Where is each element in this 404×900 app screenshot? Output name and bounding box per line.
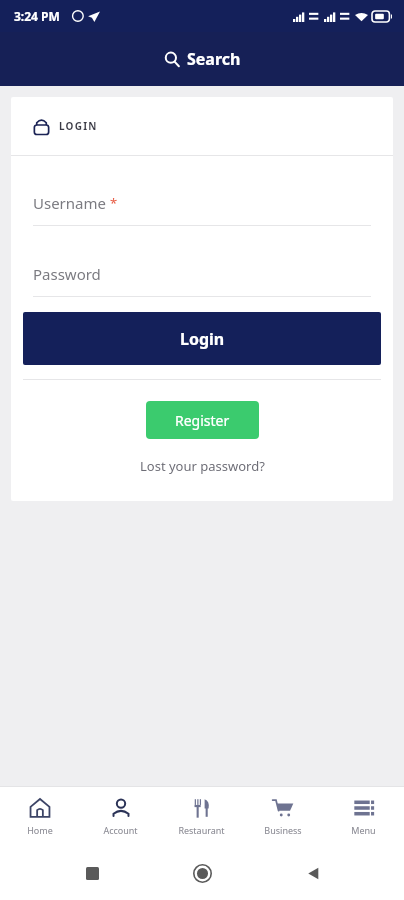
button[interactable]: Home xyxy=(0,791,80,842)
staticText: Menu xyxy=(351,824,376,836)
button[interactable]: Recent apps xyxy=(73,854,111,892)
button[interactable]: Account xyxy=(80,791,161,842)
button[interactable]: Register xyxy=(146,401,259,439)
staticText: Restaurant xyxy=(178,824,225,836)
staticText: Home xyxy=(27,824,53,836)
button[interactable]: Back xyxy=(294,854,332,892)
button[interactable]: Username xyxy=(33,193,371,226)
staticText: 3:24 PM xyxy=(14,8,60,24)
button[interactable]: Lost your password? xyxy=(136,453,269,479)
staticText: Search xyxy=(187,48,241,70)
button[interactable]: Menu xyxy=(323,791,404,842)
button[interactable]: Password xyxy=(33,264,371,297)
staticText: LOGIN xyxy=(59,119,98,133)
staticText: Business xyxy=(264,824,302,836)
button[interactable]: Search xyxy=(0,32,404,86)
staticText: Password xyxy=(33,264,101,284)
staticText: Username xyxy=(33,193,106,213)
staticText: Register xyxy=(175,411,230,430)
button[interactable]: Home xyxy=(183,854,221,892)
button[interactable]: Login xyxy=(23,312,381,365)
staticText: * xyxy=(110,194,118,212)
button[interactable]: Business xyxy=(242,791,323,842)
staticText: Lost your password? xyxy=(140,457,265,475)
staticText: Login xyxy=(180,328,225,350)
button[interactable]: Restaurant xyxy=(161,791,242,842)
staticText: Account xyxy=(103,824,138,836)
